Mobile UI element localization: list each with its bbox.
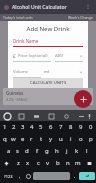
staticText: 4.2% · 568ml bbox=[6, 97, 27, 102]
staticText: e bbox=[21, 135, 25, 143]
button[interactable]: ?123 bbox=[1, 170, 15, 182]
staticText: h bbox=[55, 147, 59, 155]
button[interactable]: v bbox=[43, 157, 53, 169]
button[interactable]: Enter bbox=[79, 172, 95, 180]
button[interactable]: c bbox=[33, 157, 43, 169]
button[interactable]: g bbox=[42, 145, 52, 157]
staticText: z bbox=[17, 159, 20, 167]
button[interactable]: 5 bbox=[36, 121, 46, 133]
button[interactable]: d bbox=[22, 145, 32, 157]
button[interactable]: Hide keyboard bbox=[77, 112, 85, 120]
staticText: b bbox=[56, 159, 60, 167]
button[interactable]: f bbox=[32, 145, 42, 157]
staticText: 5 bbox=[39, 123, 43, 131]
staticText: 1 bbox=[3, 123, 7, 131]
button[interactable]: e bbox=[18, 133, 27, 145]
button[interactable]: 4 bbox=[27, 121, 36, 133]
button[interactable]: n bbox=[63, 157, 73, 169]
button[interactable]: GIF bbox=[32, 112, 40, 120]
button[interactable]: Settings bbox=[62, 112, 70, 120]
button[interactable]: Add new drink bbox=[74, 90, 92, 108]
staticText: u bbox=[59, 135, 63, 143]
staticText: p bbox=[89, 135, 93, 143]
button[interactable]: p bbox=[86, 133, 96, 145]
staticText: 9 bbox=[79, 123, 83, 131]
button[interactable]: i bbox=[66, 133, 76, 145]
staticText: ml bbox=[44, 69, 49, 75]
button[interactable]: Space bbox=[33, 172, 70, 180]
other: App icon bbox=[4, 5, 9, 10]
button[interactable]: o bbox=[76, 133, 86, 145]
button[interactable]: j bbox=[62, 145, 72, 157]
button[interactable]: b bbox=[53, 157, 63, 169]
staticText: Alcohol Unit Calculator bbox=[12, 4, 67, 11]
button[interactable]: 6 bbox=[46, 121, 56, 133]
button[interactable]: More options bbox=[84, 3, 92, 11]
button[interactable]: m bbox=[73, 157, 83, 169]
staticText: 2 bbox=[12, 123, 16, 131]
staticText: n bbox=[66, 159, 70, 167]
staticText: Add New Drink bbox=[13, 25, 83, 33]
button[interactable]: r bbox=[27, 133, 36, 145]
staticText: Price (optional) bbox=[18, 53, 48, 59]
staticText: i bbox=[70, 135, 72, 143]
button[interactable]: Drink Name bbox=[13, 38, 83, 47]
button[interactable]: £ bbox=[13, 53, 51, 62]
staticText: Week's Change bbox=[68, 15, 93, 20]
button[interactable]: Emoji bbox=[24, 170, 32, 182]
button[interactable]: l bbox=[82, 145, 92, 157]
button[interactable]: z bbox=[13, 157, 23, 169]
button[interactable]: Change volume unit bbox=[78, 69, 83, 74]
staticText: 4 bbox=[30, 123, 34, 131]
staticText: o bbox=[79, 135, 83, 143]
staticText: l bbox=[86, 147, 88, 155]
button[interactable]: t bbox=[36, 133, 46, 145]
staticText: 0 bbox=[89, 123, 93, 131]
button[interactable]: 1 bbox=[0, 121, 9, 133]
button[interactable]: Clipboard bbox=[47, 112, 55, 120]
staticText: 3 bbox=[21, 123, 25, 131]
staticText: Guiness bbox=[6, 90, 24, 96]
button[interactable]: . bbox=[71, 170, 79, 182]
staticText: j bbox=[66, 147, 68, 155]
button[interactable]: ABV bbox=[55, 53, 83, 62]
staticText: 7 bbox=[59, 123, 63, 131]
staticText: £ bbox=[13, 53, 16, 59]
button[interactable]: 7 bbox=[56, 121, 66, 133]
button[interactable]: Voice input bbox=[85, 112, 93, 120]
staticText: 2.3 units bbox=[75, 91, 90, 96]
button[interactable]: q bbox=[0, 133, 9, 145]
button[interactable]: Guiness bbox=[3, 88, 93, 105]
button[interactable]: 2 bbox=[9, 121, 18, 133]
staticText: v bbox=[46, 159, 50, 167]
staticText: y bbox=[49, 135, 53, 143]
staticText: Today's total units bbox=[3, 15, 33, 20]
button[interactable]: x bbox=[23, 157, 33, 169]
staticText: Drink Name bbox=[13, 38, 39, 44]
staticText: k bbox=[75, 147, 79, 155]
staticText: t bbox=[40, 135, 43, 143]
staticText: c bbox=[37, 159, 40, 167]
staticText: s bbox=[16, 147, 19, 155]
button[interactable]: Backspace bbox=[83, 157, 96, 169]
button[interactable]: k bbox=[72, 145, 82, 157]
button[interactable]: w bbox=[9, 133, 18, 145]
button[interactable]: 0 bbox=[86, 121, 96, 133]
button[interactable]: s bbox=[13, 145, 22, 157]
button[interactable]: Stickers bbox=[17, 112, 25, 120]
button[interactable]: 3 bbox=[18, 121, 27, 133]
staticText: 8 bbox=[69, 123, 73, 131]
button[interactable]: Shift bbox=[0, 157, 13, 169]
button[interactable]: u bbox=[56, 133, 66, 145]
button[interactable]: Search bbox=[3, 112, 11, 120]
button[interactable]: , bbox=[15, 170, 24, 182]
staticText: ?123 bbox=[4, 174, 13, 179]
button[interactable]: h bbox=[52, 145, 62, 157]
button[interactable]: Volume bbox=[13, 69, 41, 78]
button[interactable]: 9 bbox=[76, 121, 86, 133]
staticText: £4.20 bbox=[81, 97, 90, 102]
button[interactable]: a bbox=[4, 145, 13, 157]
button[interactable]: 8 bbox=[66, 121, 76, 133]
button[interactable]: y bbox=[46, 133, 56, 145]
button[interactable]: CALCULATE UNITS bbox=[13, 78, 83, 88]
